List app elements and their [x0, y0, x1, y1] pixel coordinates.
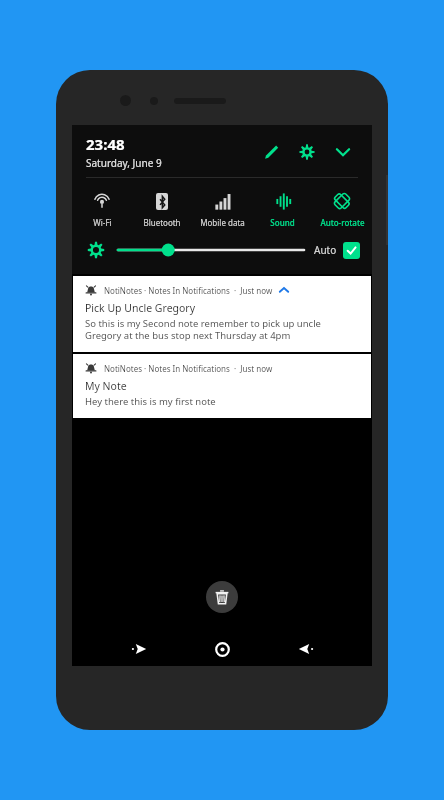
- button[interactable]: Brightness: [84, 238, 108, 262]
- button[interactable]: Delete all notifications: [206, 581, 238, 613]
- staticText: Sound: [270, 217, 295, 228]
- button[interactable]: Back: [289, 632, 323, 666]
- staticText: Auto-rotate: [320, 217, 365, 228]
- staticText: Wi-Fi: [93, 217, 112, 228]
- button[interactable]: Bluetooth: [132, 188, 192, 230]
- button[interactable]: Wi-Fi: [72, 188, 132, 230]
- button[interactable]: Collapse: [328, 137, 358, 167]
- staticText: 23:48: [86, 134, 125, 154]
- button[interactable]: Home: [205, 632, 239, 666]
- staticText: Hey there this is my first note: [85, 395, 216, 408]
- staticText: NotiNotes · Notes In Notifications · Jus…: [104, 285, 273, 296]
- button[interactable]: Edit: [256, 137, 286, 167]
- button[interactable]: [118, 241, 304, 259]
- button[interactable]: Recents: [122, 632, 156, 666]
- staticText: NotiNotes · Notes In Notifications · Jus…: [104, 363, 273, 374]
- button[interactable]: Settings: [292, 137, 322, 167]
- button[interactable]: Mobile data: [192, 188, 252, 230]
- button[interactable]: Auto brightness on: [343, 242, 360, 259]
- button[interactable]: NotiNotes · Notes In Notifications · Jus…: [73, 354, 371, 418]
- button[interactable]: Auto-rotate: [312, 188, 372, 230]
- staticText: Saturday, June 9: [86, 156, 162, 170]
- staticText: Bluetooth: [143, 217, 181, 228]
- button[interactable]: Sound: [252, 188, 312, 230]
- staticText: My Note: [85, 379, 127, 393]
- button[interactable]: NotiNotes · Notes In Notifications · Jus…: [73, 276, 371, 352]
- staticText: So this is my Second note remember to pi…: [85, 317, 321, 342]
- staticText: Auto: [314, 243, 337, 257]
- button[interactable]: Collapse notification: [278, 284, 290, 296]
- staticText: Mobile data: [200, 217, 245, 228]
- staticText: Pick Up Uncle Gregory: [85, 301, 196, 315]
